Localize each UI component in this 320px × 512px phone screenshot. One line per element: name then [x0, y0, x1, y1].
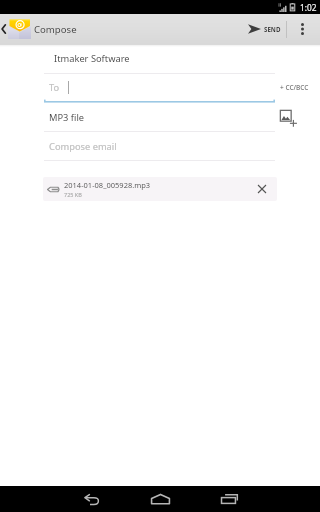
staticText: To: [49, 81, 60, 94]
staticText: MP3 file: [49, 111, 85, 124]
staticText: Compose email: [49, 140, 117, 153]
staticText: SEND: [264, 25, 281, 33]
button[interactable]: Navigate up: [0, 14, 320, 44]
staticText: Compose: [34, 23, 77, 36]
staticText: 2014-01-08_005928.mp3: [64, 180, 151, 190]
button[interactable]: Remove attachment: [251, 178, 273, 200]
staticText: Itmaker Software: [54, 52, 130, 65]
button[interactable]: + CC/BCC: [280, 83, 320, 92]
button[interactable]: Back: [77, 486, 105, 512]
button[interactable]: Home: [145, 486, 175, 512]
staticText: 725 KB: [64, 191, 82, 198]
button[interactable]: Recent apps: [216, 486, 242, 512]
button[interactable]: 2014-01-08_005928.mp3: [43, 177, 277, 201]
staticText: 1:02: [300, 2, 317, 13]
button[interactable]: SEND: [246, 14, 286, 44]
button[interactable]: Attach image: [274, 104, 300, 128]
button[interactable]: More options: [287, 14, 310, 44]
